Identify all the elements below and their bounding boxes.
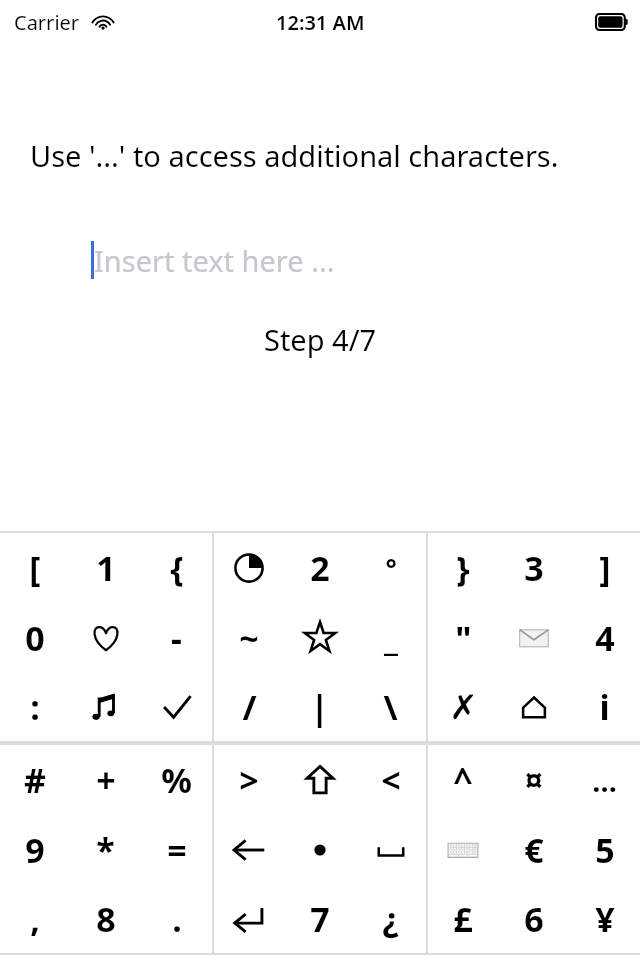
staticText: Insert text here ...	[94, 241, 335, 280]
button[interactable]: ¿	[355, 884, 426, 953]
staticText: \	[383, 684, 398, 730]
button[interactable]: =	[141, 815, 212, 884]
button[interactable]: Shift	[284, 745, 355, 815]
staticText: 5	[595, 827, 615, 873]
staticText: =	[167, 827, 187, 873]
button[interactable]: Check mark	[141, 672, 212, 741]
staticText: #	[24, 757, 46, 803]
button[interactable]: "	[428, 603, 498, 672]
staticText: .	[172, 896, 182, 942]
staticText: "	[455, 615, 472, 661]
button[interactable]: <	[355, 745, 426, 815]
button[interactable]: |	[284, 672, 355, 741]
staticText: ¤	[524, 757, 544, 803]
staticText: €	[524, 827, 544, 873]
staticText: ¿	[382, 896, 399, 942]
staticText: [	[29, 545, 41, 591]
staticText: -	[171, 615, 182, 661]
staticText: 12:31 AM	[276, 9, 365, 36]
staticText: 9	[25, 827, 45, 873]
button[interactable]: Envelope	[498, 603, 569, 672]
staticText: *	[96, 827, 115, 873]
staticText: ]	[599, 545, 611, 591]
staticText: 0	[25, 615, 45, 661]
staticText: °	[385, 550, 397, 586]
button[interactable]: Home	[498, 672, 569, 741]
staticText: Use '...' to access additional character…	[30, 136, 582, 175]
staticText: £	[453, 896, 473, 942]
button[interactable]: :	[0, 672, 70, 741]
button[interactable]: #	[0, 745, 70, 815]
staticText: /	[242, 684, 257, 730]
button[interactable]: }	[428, 533, 498, 603]
staticText: {	[170, 545, 184, 591]
button[interactable]: €	[498, 815, 569, 884]
button[interactable]: 3	[498, 533, 569, 603]
button[interactable]: ¤	[498, 745, 569, 815]
button[interactable]: i	[569, 672, 640, 741]
button[interactable]: 9	[0, 815, 70, 884]
button[interactable]: +	[70, 745, 141, 815]
staticText: +	[96, 757, 116, 803]
staticText: ✗	[449, 687, 478, 727]
staticText: i	[599, 684, 610, 730]
button[interactable]: £	[428, 884, 498, 953]
button[interactable]: .	[141, 884, 212, 953]
button[interactable]: Heart	[70, 603, 141, 672]
button[interactable]: Pie	[214, 533, 284, 603]
staticText: 1	[96, 545, 116, 591]
button[interactable]: 8	[70, 884, 141, 953]
button[interactable]: -	[141, 603, 212, 672]
button[interactable]: {	[141, 533, 212, 603]
staticText: <	[381, 757, 401, 803]
staticText: Carrier	[14, 9, 80, 36]
staticText: 4	[595, 615, 615, 661]
staticText: >	[239, 757, 259, 803]
button[interactable]: %	[141, 745, 212, 815]
button[interactable]: Star	[284, 603, 355, 672]
button[interactable]: ¥	[569, 884, 640, 953]
button[interactable]: *	[70, 815, 141, 884]
button[interactable]: Music note	[70, 672, 141, 741]
button[interactable]: Keyboard	[428, 815, 498, 884]
staticText: :	[30, 684, 40, 730]
staticText: _	[384, 615, 398, 661]
staticText: ¥	[595, 896, 615, 942]
staticText: ~	[239, 615, 259, 661]
staticText: |	[310, 684, 329, 730]
button[interactable]: ✗	[428, 672, 498, 741]
staticText: Step 4/7	[0, 320, 640, 359]
button[interactable]: Insert text here ...	[0, 233, 640, 287]
button[interactable]: >	[214, 745, 284, 815]
button[interactable]: ,	[0, 884, 70, 953]
button[interactable]: …	[569, 745, 640, 815]
staticText: 2	[310, 545, 330, 591]
button[interactable]: /	[214, 672, 284, 741]
staticText: 6	[524, 896, 544, 942]
button[interactable]: 0	[0, 603, 70, 672]
staticText: 8	[96, 896, 116, 942]
button[interactable]: ]	[569, 533, 640, 603]
button[interactable]: ~	[214, 603, 284, 672]
button[interactable]: \	[355, 672, 426, 741]
button[interactable]: Space	[355, 815, 426, 884]
button[interactable]: ^	[428, 745, 498, 815]
button[interactable]: Bullet	[284, 815, 355, 884]
staticText: ^	[453, 757, 473, 803]
button[interactable]: 2	[284, 533, 355, 603]
staticText: ,	[30, 896, 40, 942]
button[interactable]: °	[355, 533, 426, 603]
staticText: 3	[524, 545, 544, 591]
button[interactable]: [	[0, 533, 70, 603]
button[interactable]: 7	[284, 884, 355, 953]
button[interactable]: _	[355, 603, 426, 672]
staticText: …	[592, 761, 617, 800]
button[interactable]: 1	[70, 533, 141, 603]
staticText: }	[456, 545, 470, 591]
staticText: 7	[310, 896, 330, 942]
button[interactable]: 4	[569, 603, 640, 672]
button[interactable]: Enter	[214, 884, 284, 953]
button[interactable]: Backspace	[214, 815, 284, 884]
button[interactable]: 6	[498, 884, 569, 953]
button[interactable]: 5	[569, 815, 640, 884]
